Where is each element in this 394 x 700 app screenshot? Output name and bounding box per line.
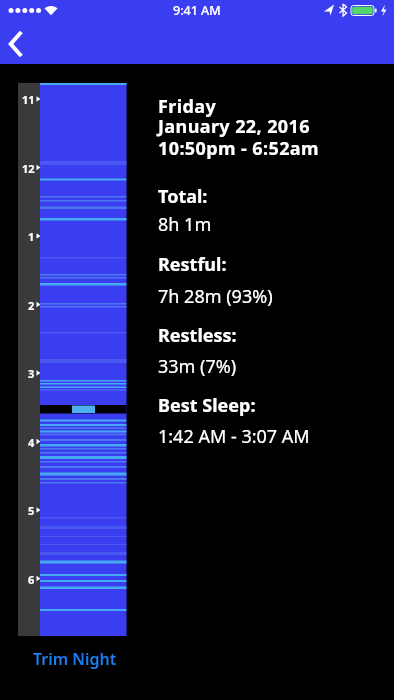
staticText: 12	[22, 161, 35, 176]
staticText: 2	[28, 298, 35, 313]
staticText: 1	[28, 229, 35, 244]
staticText: 5	[28, 503, 35, 518]
staticText: Best Sleep:	[158, 393, 256, 418]
staticText: 8h 1m	[158, 212, 212, 237]
button[interactable]	[0, 26, 38, 62]
staticText: 11	[22, 92, 35, 107]
staticText: 7h 28m (93%)	[158, 284, 273, 309]
staticText: Trim Night	[33, 648, 117, 670]
button[interactable]: Trim Night	[20, 644, 130, 674]
staticText: 4	[28, 435, 35, 450]
staticText: 1:42 AM - 3:07 AM	[158, 424, 310, 449]
staticText: Restful:	[158, 252, 227, 277]
button[interactable]	[18, 83, 127, 636]
staticText: 9:41 AM	[173, 2, 221, 19]
staticText: Friday	[158, 94, 217, 119]
staticText: Total:	[158, 184, 208, 209]
staticText: January 22, 2016	[158, 114, 310, 139]
staticText: 10:50pm - 6:52am	[158, 136, 319, 161]
staticText: 6	[28, 572, 35, 587]
staticText: 33m (7%)	[158, 354, 237, 379]
staticText: 3	[28, 366, 35, 381]
staticText: Restless:	[158, 323, 237, 348]
